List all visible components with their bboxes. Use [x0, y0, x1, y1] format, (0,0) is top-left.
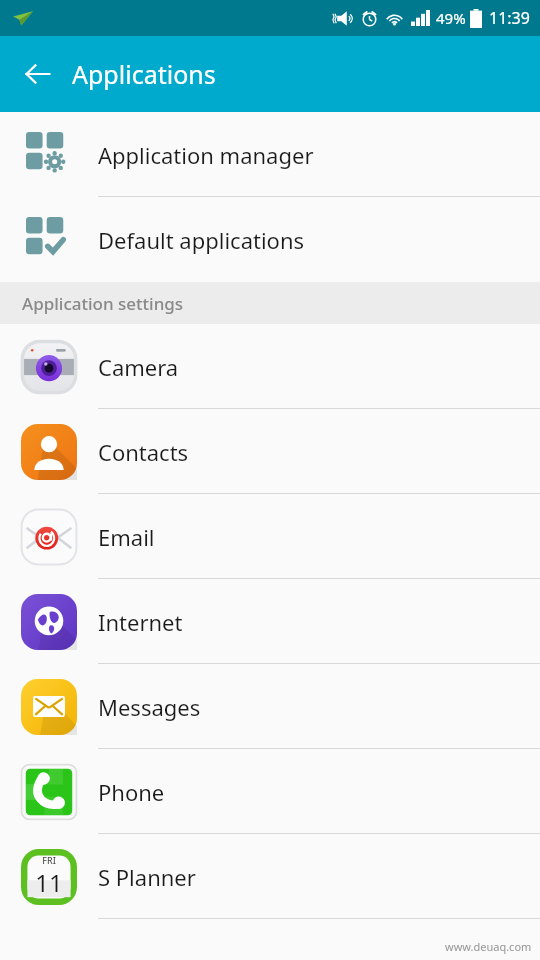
- button[interactable]: Internet: [0, 579, 540, 664]
- staticText: Internet: [98, 607, 183, 637]
- staticText: Phone: [98, 777, 165, 807]
- staticText: 11: [35, 866, 63, 899]
- staticText: Application manager: [98, 140, 314, 170]
- staticText: Application settings: [22, 292, 184, 315]
- button[interactable]: Camera: [0, 324, 540, 409]
- staticText: FRI: [42, 854, 56, 866]
- staticText: Messages: [98, 692, 201, 722]
- staticText: Camera: [98, 352, 179, 382]
- staticText: S Planner: [98, 862, 196, 892]
- staticText: Applications: [72, 57, 216, 91]
- button[interactable]: Navigate up: [10, 46, 66, 102]
- button[interactable]: FRI: [0, 834, 540, 919]
- button[interactable]: Application manager: [0, 112, 540, 197]
- staticText: Email: [98, 522, 155, 552]
- staticText: Default applications: [98, 225, 305, 255]
- button[interactable]: Messages: [0, 664, 540, 749]
- staticText: www.deuaq.com: [445, 939, 532, 954]
- staticText: 11:39: [489, 7, 530, 29]
- button[interactable]: Contacts: [0, 409, 540, 494]
- staticText: 49%: [436, 8, 466, 28]
- staticText: Contacts: [98, 437, 189, 467]
- button[interactable]: Email: [0, 494, 540, 579]
- button[interactable]: Phone: [0, 749, 540, 834]
- button[interactable]: Default applications: [0, 197, 540, 282]
